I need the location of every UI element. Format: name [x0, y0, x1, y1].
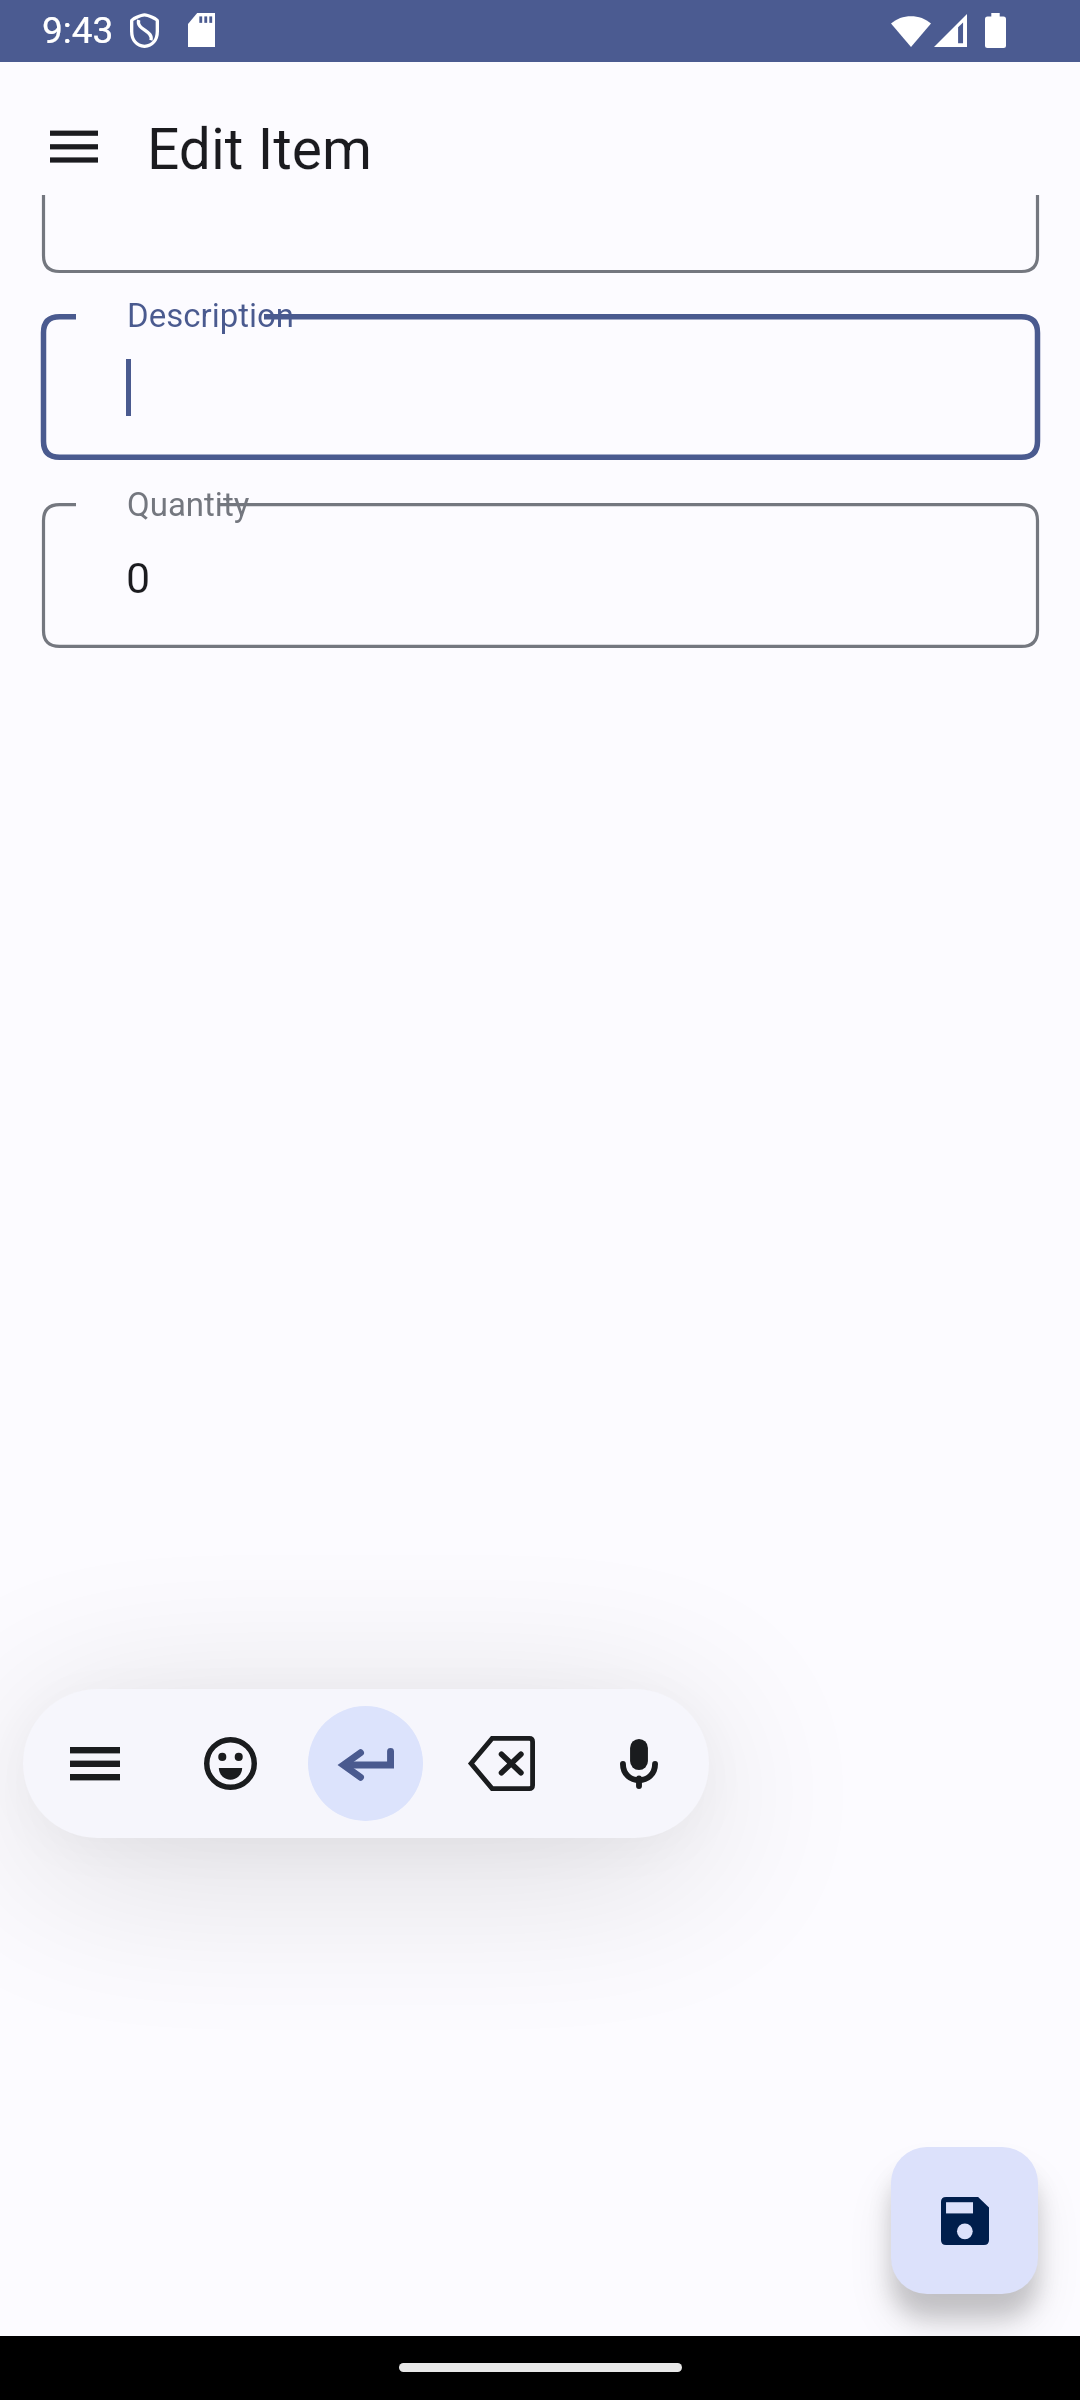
- button[interactable]: Emoji: [173, 1706, 288, 1821]
- staticText: 0: [126, 553, 151, 603]
- button[interactable]: Description: [42, 314, 1039, 460]
- button[interactable]: Voice input: [581, 1706, 696, 1821]
- staticText: 9:43: [42, 9, 114, 52]
- staticText: Description: [127, 296, 295, 335]
- staticText: Edit Item: [147, 116, 373, 183]
- button[interactable]: Quantity: [42, 503, 1039, 648]
- button[interactable]: Keyboard layouts: [37, 1706, 152, 1821]
- staticText: Quantity: [127, 485, 250, 524]
- button[interactable]: Save item: [891, 2147, 1038, 2294]
- button[interactable]: Open navigation menu: [26, 83, 122, 179]
- button[interactable]: [42, 200, 1039, 272]
- button[interactable]: Backspace: [444, 1706, 559, 1821]
- button[interactable]: Enter: [309, 1706, 424, 1821]
